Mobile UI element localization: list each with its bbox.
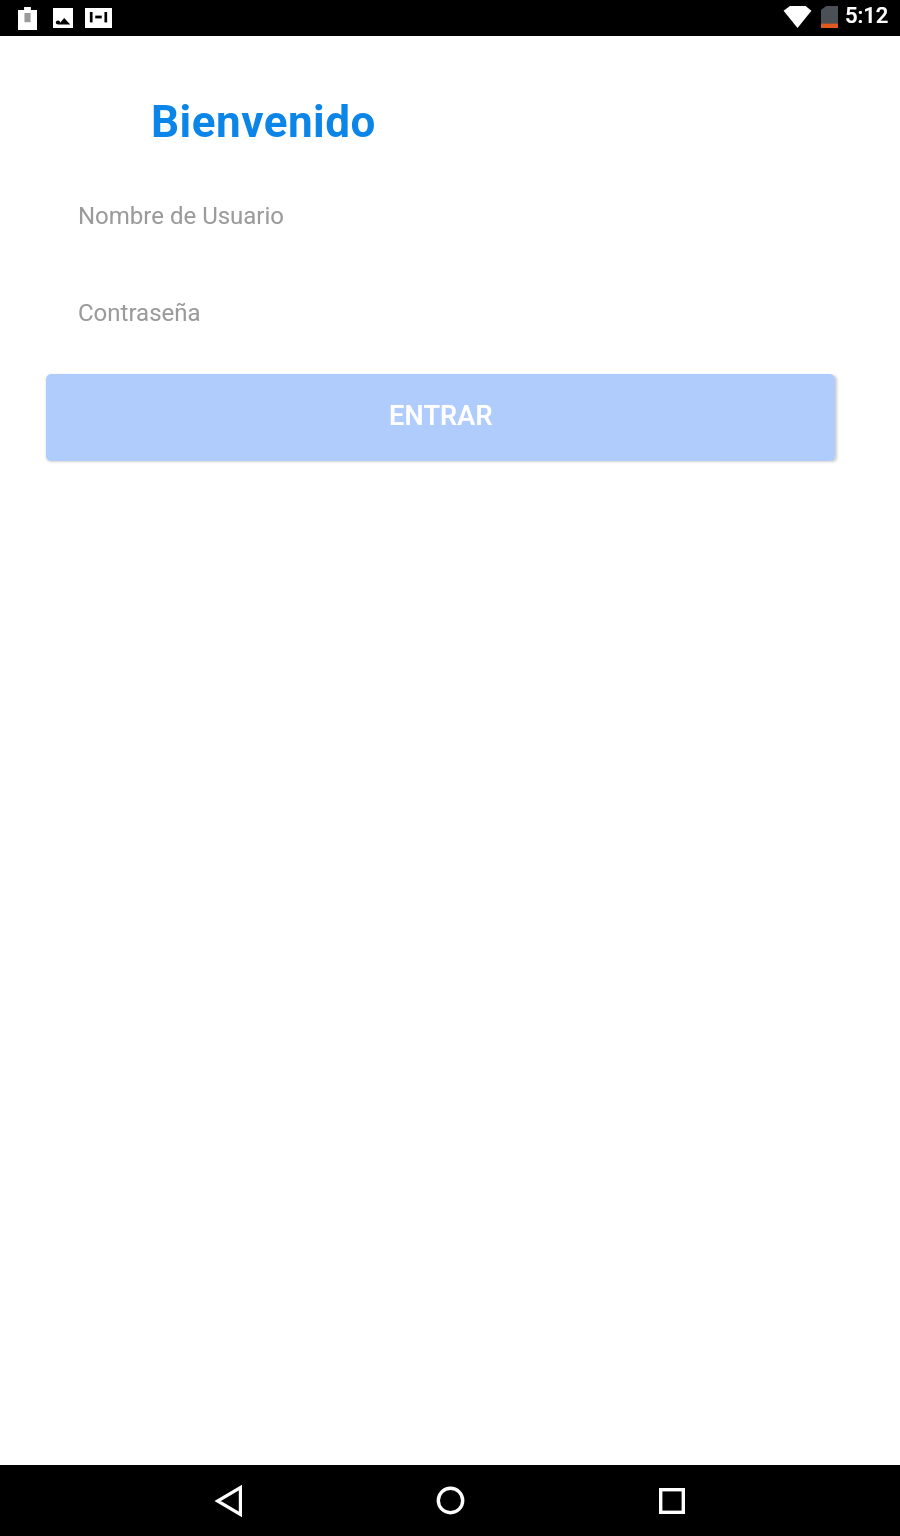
button[interactable]: Back [169,1465,289,1536]
button[interactable]: Contraseña [0,293,900,333]
staticText: 5:12 [845,3,889,29]
button[interactable]: Recent apps [612,1465,732,1536]
staticText: ENTRAR [389,400,493,432]
button[interactable]: Nombre de Usuario [0,196,900,236]
button[interactable]: ENTRAR [46,374,835,461]
staticText: Bienvenido [151,96,376,148]
staticText: Contraseña [78,299,201,327]
staticText: Nombre de Usuario [78,202,285,230]
button[interactable]: Home [390,1465,510,1536]
